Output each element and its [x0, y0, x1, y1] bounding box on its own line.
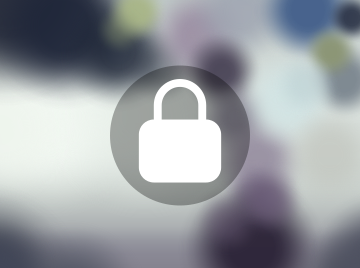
button[interactable]: Locked — [110, 65, 250, 205]
